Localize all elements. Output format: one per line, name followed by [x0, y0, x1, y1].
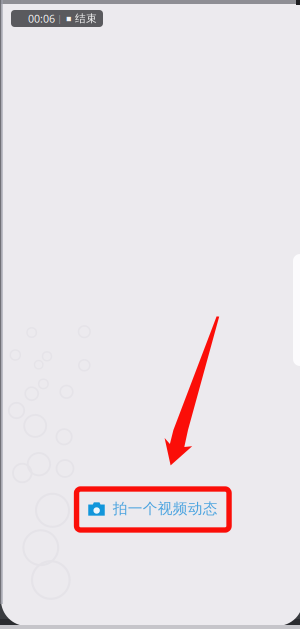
staticText: 结束 — [72, 12, 97, 25]
button[interactable]: 拍一个视频动态 — [74, 490, 232, 527]
staticText: | — [55, 12, 62, 25]
staticText: 00:06 — [28, 11, 55, 26]
staticText: ◼ — [66, 15, 72, 22]
staticText: 拍一个视频动态 — [113, 499, 218, 518]
